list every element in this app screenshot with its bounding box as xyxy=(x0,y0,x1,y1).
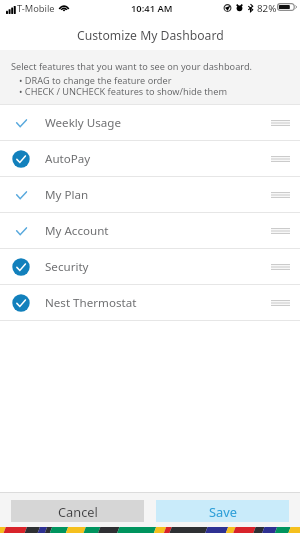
staticText: My Account xyxy=(45,223,109,239)
staticText: Select features that you want to see on … xyxy=(11,60,253,73)
staticText: Weekly Usage xyxy=(45,115,121,131)
other: Reorder xyxy=(266,221,295,241)
staticText: Save xyxy=(209,503,237,520)
staticText: • DRAG to change the feature order xyxy=(19,74,172,87)
staticText: T-Mobile xyxy=(17,2,55,15)
button[interactable]: Security xyxy=(0,249,300,284)
button[interactable]: My Plan xyxy=(0,177,300,212)
button[interactable]: Save xyxy=(156,500,289,522)
button[interactable]: My Account xyxy=(0,213,300,248)
other: Reorder xyxy=(266,113,295,133)
other: Reorder xyxy=(266,257,295,277)
staticText: 10:41 AM xyxy=(131,2,173,15)
staticText: My Plan xyxy=(45,187,89,203)
button[interactable]: Nest Thermostat xyxy=(0,285,300,320)
button[interactable]: Weekly Usage xyxy=(0,105,300,140)
other: Reorder xyxy=(266,293,295,313)
button[interactable]: Cancel xyxy=(11,500,144,522)
staticText: Security xyxy=(45,259,89,275)
staticText: AutoPay xyxy=(45,151,91,167)
staticText: • CHECK / UNCHECK features to show/hide … xyxy=(19,85,228,98)
staticText: Customize My Dashboard xyxy=(77,27,224,44)
button[interactable]: AutoPay xyxy=(0,141,300,176)
other: Reorder xyxy=(266,149,295,169)
staticText: 82% xyxy=(257,2,277,15)
staticText: Cancel xyxy=(58,503,98,520)
staticText: Nest Thermostat xyxy=(45,295,137,311)
other: Reorder xyxy=(266,185,295,205)
